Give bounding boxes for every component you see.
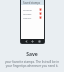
staticText: your favorite stamps. The list will be i… [5, 60, 59, 68]
button[interactable]: Recents [38, 40, 41, 43]
button[interactable]: Market [21, 11, 44, 15]
staticText: Save [0, 51, 64, 58]
staticText: Saved stamps [23, 1, 41, 5]
button[interactable]: Back [25, 40, 28, 43]
staticText: Market [23, 12, 39, 15]
button[interactable]: Delete Market [39, 12, 42, 15]
staticText: Sunrise [23, 8, 39, 11]
button[interactable]: Home [31, 40, 34, 43]
button[interactable]: Saved stamps [21, 0, 44, 5]
button[interactable]: Delete Library [39, 16, 42, 19]
button[interactable]: Sunrise [21, 7, 44, 11]
staticText: Library [23, 16, 39, 19]
button[interactable]: Delete Sunrise [39, 8, 42, 11]
button[interactable]: Library [21, 15, 44, 19]
